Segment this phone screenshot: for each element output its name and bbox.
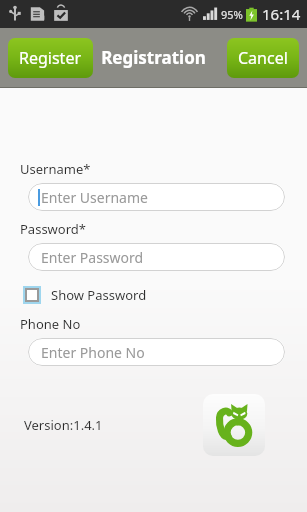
staticText: Register xyxy=(19,47,82,69)
staticText: Enter Password xyxy=(41,248,144,267)
staticText: Registration xyxy=(101,46,206,69)
button[interactable]: Enter Phone No xyxy=(28,338,285,366)
button[interactable]: App logo xyxy=(203,394,265,456)
staticText: Username* xyxy=(20,160,91,178)
staticText: 16:14 xyxy=(262,4,301,24)
staticText: Enter Username xyxy=(41,188,148,207)
button[interactable]: Register xyxy=(8,38,93,78)
staticText: Phone No xyxy=(20,315,81,333)
staticText: Show Password xyxy=(51,286,147,304)
button[interactable]: Cancel xyxy=(227,38,299,78)
staticText: 95% xyxy=(221,7,243,22)
staticText: Password* xyxy=(20,220,86,238)
button[interactable]: Enter Password xyxy=(28,243,285,271)
staticText: Enter Phone No xyxy=(41,343,145,362)
button[interactable]: Enter Username xyxy=(28,183,285,211)
button[interactable]: Show Password xyxy=(22,285,147,304)
staticText: Cancel xyxy=(238,47,288,69)
staticText: Version:1.4.1 xyxy=(24,416,103,434)
